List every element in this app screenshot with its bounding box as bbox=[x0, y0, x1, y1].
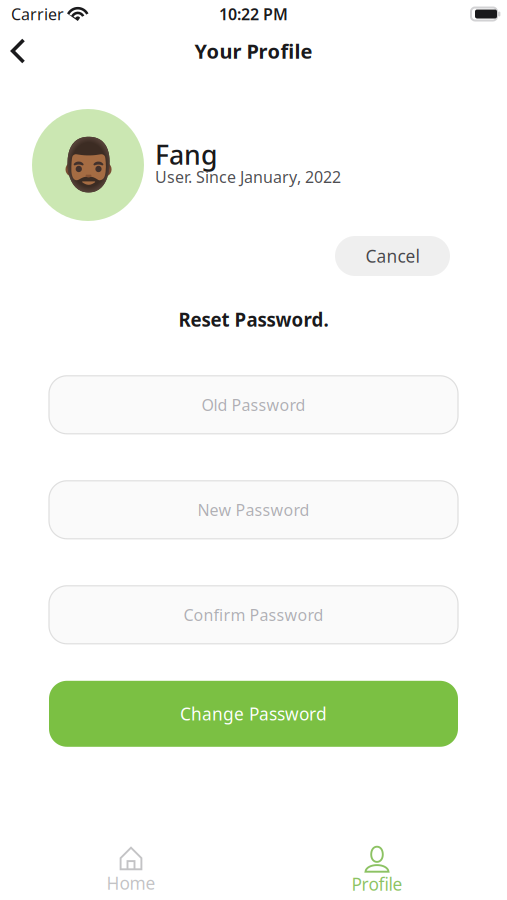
button[interactable]: Back bbox=[0, 28, 42, 73]
staticText: Cancel bbox=[365, 244, 419, 267]
button[interactable]: Home bbox=[71, 846, 191, 894]
staticText: Your Profile bbox=[194, 38, 312, 64]
button[interactable]: Cancel bbox=[335, 236, 450, 276]
staticText: Fang bbox=[155, 137, 218, 172]
staticText: User. Since January, 2022 bbox=[155, 166, 341, 187]
button[interactable]: Change Password bbox=[49, 681, 458, 747]
staticText: New Password bbox=[197, 499, 309, 520]
staticText: Reset Password. bbox=[178, 307, 328, 332]
staticText: Profile bbox=[351, 872, 402, 895]
staticText: 10:22 PM bbox=[219, 3, 288, 25]
button[interactable]: Profile bbox=[317, 845, 437, 895]
staticText: 🧔🏾‍♂️ bbox=[56, 136, 119, 194]
staticText: Change Password bbox=[180, 702, 327, 725]
staticText: Confirm Password bbox=[183, 604, 323, 625]
staticText: Home bbox=[106, 871, 155, 894]
staticText: Carrier bbox=[11, 3, 64, 25]
staticText: Old Password bbox=[201, 394, 305, 415]
